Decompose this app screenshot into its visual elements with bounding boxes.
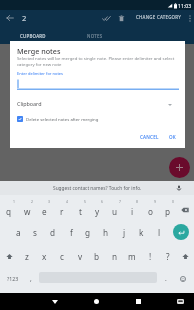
staticText: h xyxy=(103,227,109,238)
button[interactable]: Delete selected notes after merging xyxy=(17,116,99,122)
staticText: 6 xyxy=(101,199,103,204)
staticText: o xyxy=(148,206,153,217)
staticText: 4 xyxy=(66,199,68,204)
button[interactable]: OK xyxy=(165,130,180,144)
staticText: g xyxy=(85,227,91,238)
staticText: c xyxy=(60,251,64,262)
button[interactable]: 1 xyxy=(0,198,18,221)
button[interactable]: m xyxy=(123,245,141,268)
button[interactable]: g xyxy=(79,221,97,244)
button[interactable]: 4 xyxy=(53,198,71,221)
staticText: v xyxy=(78,251,83,262)
staticText: j xyxy=(123,227,126,238)
button[interactable]: v xyxy=(71,245,89,268)
button[interactable]: Merge notes xyxy=(98,10,114,26)
button[interactable]: Shift xyxy=(0,245,18,268)
staticText: Enter delimiter for notes xyxy=(17,71,64,76)
button[interactable]: b xyxy=(88,245,106,268)
button[interactable]: CHANGE CATEGORY xyxy=(133,11,185,23)
button[interactable]: Add note xyxy=(169,157,190,178)
button[interactable]: 7 xyxy=(106,198,124,221)
staticText: Delete selected notes after merging xyxy=(26,116,99,122)
button[interactable]: ?123 xyxy=(1,267,25,290)
button[interactable]: 8 xyxy=(123,198,141,221)
staticText: ? xyxy=(166,251,170,262)
staticText: ?123 xyxy=(7,275,19,282)
staticText: y xyxy=(95,206,100,217)
button[interactable]: More options xyxy=(182,10,194,26)
button[interactable]: Switch keyboard xyxy=(172,293,189,310)
button[interactable]: ? xyxy=(159,245,177,268)
button[interactable]: Shift xyxy=(176,245,194,268)
staticText: 2 xyxy=(31,199,33,204)
button[interactable]: n xyxy=(106,245,124,268)
staticText: w xyxy=(24,206,31,217)
staticText: r xyxy=(60,206,64,217)
button[interactable]: Emoji xyxy=(174,267,192,290)
button[interactable]: Enter xyxy=(173,224,189,240)
staticText: , xyxy=(30,274,32,283)
button[interactable]: , xyxy=(23,267,38,290)
staticText: d xyxy=(50,227,56,238)
staticText: 1 xyxy=(13,199,15,204)
button[interactable]: a xyxy=(9,221,27,244)
staticText: l xyxy=(158,227,161,238)
staticText: a xyxy=(16,227,21,238)
button[interactable]: CUPBOARD xyxy=(1,28,65,44)
staticText: CANCEL xyxy=(140,134,159,140)
button[interactable]: Back xyxy=(2,10,18,26)
staticText: 5 xyxy=(84,199,86,204)
button[interactable]: Delete xyxy=(113,10,129,26)
button[interactable]: Suggest contact names? Touch for info. xyxy=(53,185,142,192)
staticText: n xyxy=(112,251,118,262)
staticText: CHANGE CATEGORY xyxy=(136,14,182,20)
button[interactable]: 0 xyxy=(159,198,177,221)
button[interactable]: ! xyxy=(141,245,159,268)
button[interactable]: l xyxy=(150,221,168,244)
staticText: Merge notes xyxy=(17,46,61,56)
staticText: . xyxy=(165,274,167,283)
button[interactable]: 9 xyxy=(141,198,159,221)
button[interactable]: z xyxy=(18,245,36,268)
button[interactable]: x xyxy=(35,245,53,268)
button[interactable]: j xyxy=(115,221,133,244)
staticText: 3 xyxy=(48,199,50,204)
staticText: s xyxy=(33,227,37,238)
button[interactable]: c xyxy=(53,245,71,268)
button[interactable]: Hide keyboard xyxy=(46,293,63,310)
button[interactable]: f xyxy=(62,221,80,244)
staticText: p xyxy=(165,206,171,217)
staticText: 7 xyxy=(119,199,121,204)
button[interactable]: h xyxy=(97,221,115,244)
button[interactable]: 6 xyxy=(88,198,106,221)
button[interactable]: Backspace xyxy=(176,198,194,221)
staticText: 2 xyxy=(22,13,27,23)
button[interactable]: Recent apps xyxy=(130,293,147,310)
staticText: Clipboard xyxy=(17,100,42,107)
button[interactable]: d xyxy=(44,221,62,244)
button[interactable]: Home xyxy=(88,293,105,310)
staticText: i xyxy=(131,206,134,217)
staticText: 0 xyxy=(172,199,174,204)
button[interactable]: Voice input xyxy=(175,184,183,192)
staticText: 9 xyxy=(154,199,156,204)
staticText: z xyxy=(25,251,29,262)
button[interactable]: . xyxy=(159,267,173,290)
staticText: e xyxy=(42,206,47,217)
button[interactable]: s xyxy=(26,221,44,244)
staticText: Selected notes will be merged to single … xyxy=(17,55,184,67)
button[interactable]: CANCEL xyxy=(136,130,163,144)
staticText: NOTES xyxy=(87,33,103,39)
staticText: 8 xyxy=(136,199,138,204)
staticText: q xyxy=(6,206,12,217)
button[interactable]: k xyxy=(132,221,150,244)
button[interactable]: 5 xyxy=(71,198,89,221)
button[interactable]: NOTES xyxy=(63,28,127,44)
button[interactable]: 2 xyxy=(18,198,36,221)
staticText: ! xyxy=(149,251,152,262)
staticText: u xyxy=(112,206,118,217)
staticText: f xyxy=(70,227,73,238)
button[interactable]: 3 xyxy=(35,198,53,221)
staticText: CUPBOARD xyxy=(20,33,46,39)
